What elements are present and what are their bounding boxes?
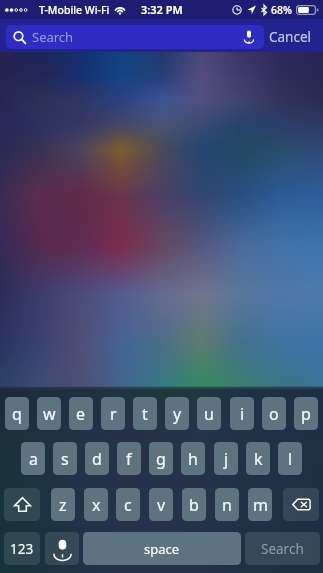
button[interactable]: Backspace <box>283 488 319 521</box>
staticText: 123 <box>10 540 34 558</box>
staticText: o <box>269 403 279 425</box>
staticText: T-Mobile Wi-Fi <box>39 3 110 17</box>
button[interactable]: y <box>165 397 189 430</box>
staticText: w <box>43 403 56 425</box>
button[interactable]: e <box>69 397 93 430</box>
button[interactable]: w <box>37 397 61 430</box>
staticText: space <box>144 540 180 558</box>
button[interactable]: k <box>246 442 270 475</box>
button[interactable]: Search <box>245 532 320 565</box>
staticText: r <box>110 403 117 425</box>
staticText: v <box>157 494 166 516</box>
staticText: h <box>188 448 198 470</box>
staticText: t <box>142 403 148 425</box>
staticText: Search <box>32 28 74 46</box>
button[interactable]: Dictation <box>45 532 79 565</box>
staticText: l <box>288 448 293 470</box>
staticText: s <box>61 448 69 470</box>
staticText: y <box>173 403 182 425</box>
button[interactable]: o <box>262 397 286 430</box>
staticText: j <box>224 448 229 470</box>
staticText: u <box>204 403 214 425</box>
button[interactable]: l <box>278 442 302 475</box>
button[interactable]: Shift <box>4 488 40 521</box>
button[interactable]: i <box>230 397 254 430</box>
staticText: z <box>59 494 67 516</box>
button[interactable]: Voice search <box>241 29 257 45</box>
button[interactable]: g <box>149 442 173 475</box>
staticText: Cancel <box>269 28 312 46</box>
staticText: q <box>12 403 22 425</box>
button[interactable]: p <box>294 397 318 430</box>
button[interactable]: 123 <box>4 532 40 565</box>
button[interactable]: r <box>101 397 125 430</box>
button[interactable]: j <box>214 442 238 475</box>
staticText: m <box>253 494 268 516</box>
button[interactable]: z <box>51 488 75 521</box>
button[interactable]: a <box>21 442 45 475</box>
staticText: 3:32 PM <box>141 2 183 17</box>
button[interactable]: t <box>133 397 157 430</box>
button[interactable]: b <box>182 488 206 521</box>
button[interactable]: c <box>116 488 140 521</box>
button[interactable]: n <box>215 488 239 521</box>
staticText: k <box>254 448 263 470</box>
button[interactable]: space <box>83 532 241 565</box>
button[interactable]: s <box>53 442 77 475</box>
staticText: b <box>189 494 199 516</box>
button[interactable]: f <box>117 442 141 475</box>
button[interactable]: Cancel <box>269 24 321 49</box>
staticText: p <box>301 403 311 425</box>
button[interactable]: v <box>149 488 173 521</box>
staticText: d <box>92 448 102 470</box>
staticText: x <box>92 494 101 516</box>
staticText: 68% <box>271 3 292 17</box>
button[interactable]: Search <box>6 25 264 49</box>
staticText: i <box>240 403 245 425</box>
button[interactable]: m <box>248 488 272 521</box>
button[interactable]: x <box>84 488 108 521</box>
staticText: g <box>156 448 166 470</box>
button[interactable]: h <box>181 442 205 475</box>
staticText: a <box>29 448 38 470</box>
button[interactable]: u <box>197 397 221 430</box>
staticText: n <box>222 494 232 516</box>
button[interactable]: q <box>5 397 29 430</box>
staticText: Search <box>261 540 304 558</box>
staticText: e <box>76 403 86 425</box>
staticText: f <box>126 448 132 470</box>
button[interactable]: d <box>85 442 109 475</box>
staticText: c <box>124 494 132 516</box>
